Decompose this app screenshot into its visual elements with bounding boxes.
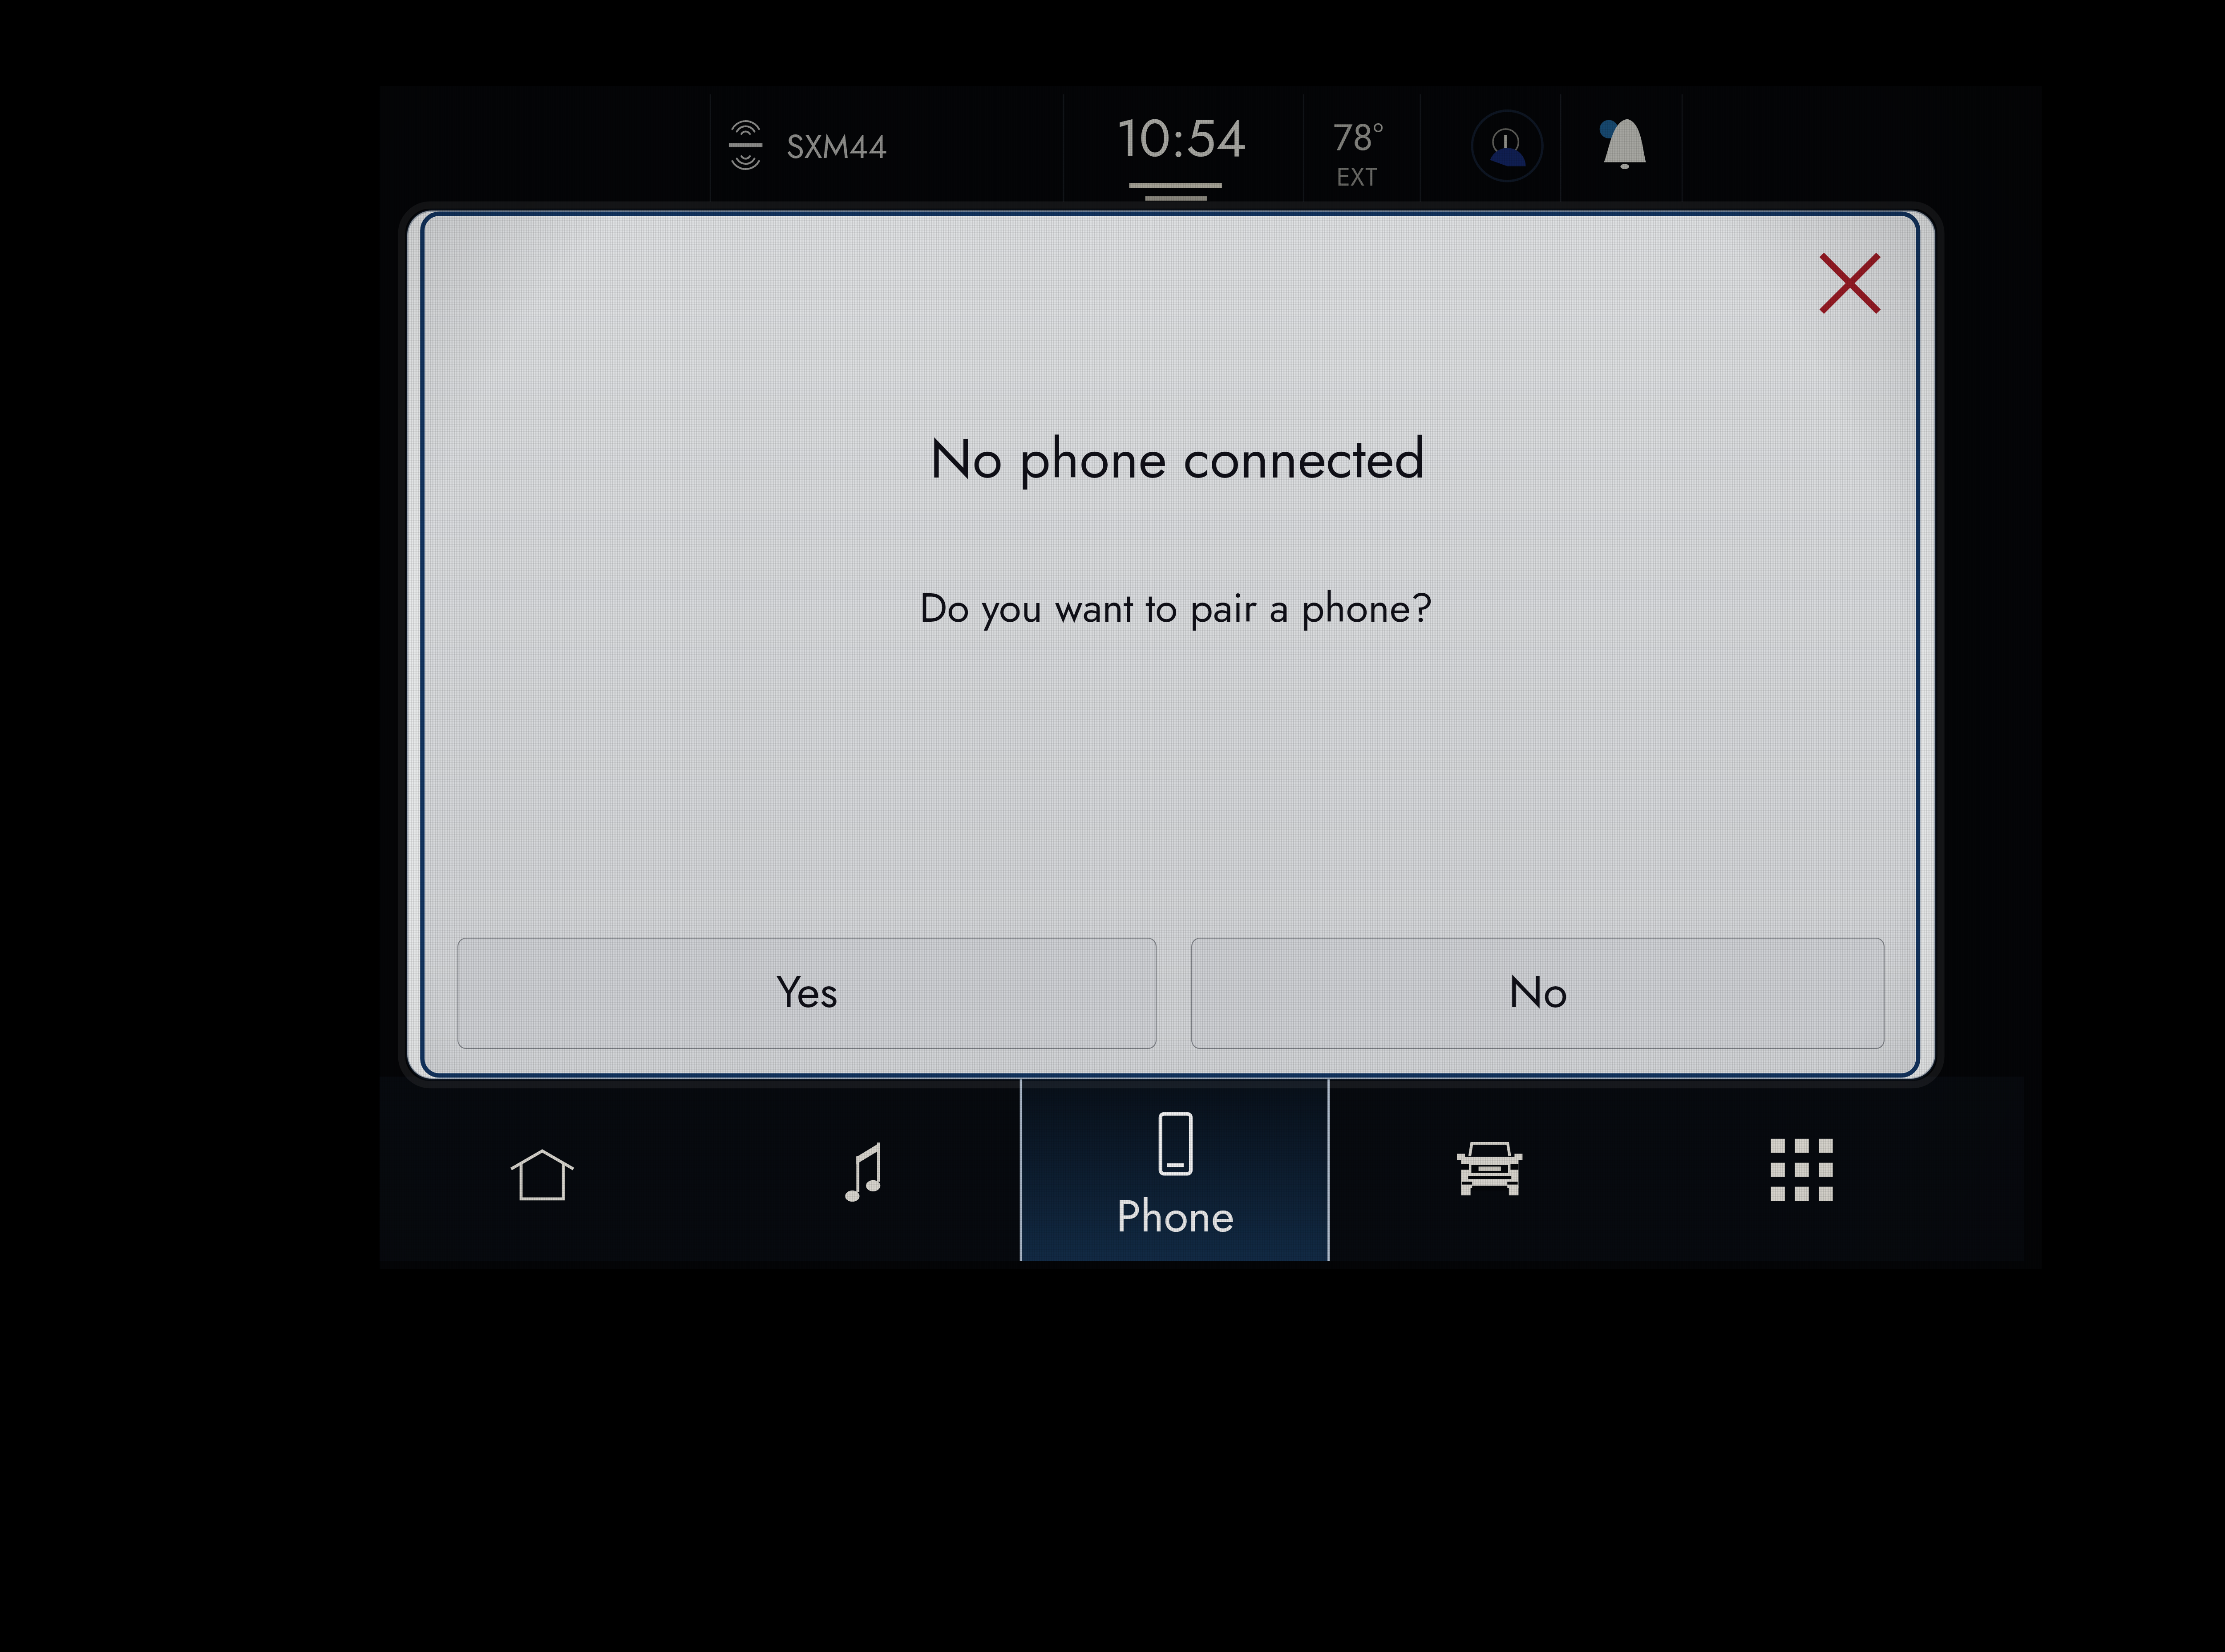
- staticText: Yes: [776, 959, 838, 1024]
- button[interactable]: Vehicle: [1330, 1077, 1646, 1261]
- staticText: 78°: [1333, 110, 1384, 164]
- button[interactable]: Close: [1794, 227, 1906, 339]
- button[interactable]: Phone: [1020, 1077, 1330, 1261]
- staticText: No: [1509, 959, 1568, 1024]
- staticText: SXM44: [786, 123, 887, 170]
- staticText: EXT: [1336, 158, 1377, 195]
- staticText: Phone: [1116, 1184, 1234, 1248]
- button[interactable]: Yes: [457, 938, 1157, 1049]
- button[interactable]: Media: [703, 1077, 1019, 1261]
- button[interactable]: Apps: [1646, 1077, 2024, 1261]
- button[interactable]: No: [1191, 938, 1885, 1049]
- button[interactable]: Home: [380, 1077, 703, 1261]
- staticText: Do you want to pair a phone?: [919, 578, 1433, 637]
- staticText: 10:54: [1116, 100, 1246, 176]
- staticText: No phone connected: [930, 418, 1426, 498]
